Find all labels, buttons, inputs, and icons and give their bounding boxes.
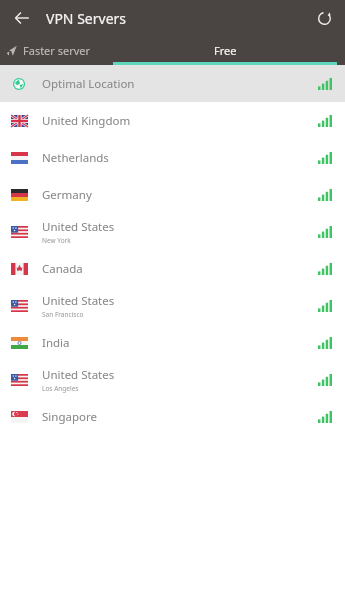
button[interactable]: Canada (0, 250, 345, 287)
staticText: Free (214, 43, 237, 58)
staticText: Singapore (42, 409, 97, 425)
staticText: India (42, 335, 70, 351)
button[interactable]: United States (0, 361, 345, 398)
staticText: Canada (42, 261, 83, 277)
button[interactable]: Back (8, 4, 36, 32)
button[interactable]: United Kingdom (0, 102, 345, 139)
staticText: Optimal Location (42, 76, 135, 92)
button[interactable]: Germany (0, 176, 345, 213)
button[interactable]: India (0, 324, 345, 361)
staticText: Faster server (23, 43, 91, 58)
staticText: San Francisco (42, 310, 84, 319)
button[interactable]: Netherlands (0, 139, 345, 176)
button[interactable]: Refresh (311, 5, 337, 31)
staticText: Germany (42, 187, 92, 203)
staticText: Los Angeles (42, 384, 79, 393)
button[interactable]: Optimal Location (0, 65, 345, 102)
staticText: Netherlands (42, 150, 109, 166)
button[interactable]: United States (0, 287, 345, 324)
button[interactable]: Faster server (0, 36, 97, 65)
staticText: United States (42, 367, 115, 383)
staticText: United States (42, 219, 115, 235)
staticText: VPN Servers (46, 9, 127, 28)
staticText: New York (42, 236, 71, 245)
button[interactable]: Free (105, 36, 345, 65)
button[interactable]: Singapore (0, 398, 345, 435)
button[interactable]: United States (0, 213, 345, 250)
staticText: United Kingdom (42, 113, 131, 129)
staticText: United States (42, 293, 115, 309)
